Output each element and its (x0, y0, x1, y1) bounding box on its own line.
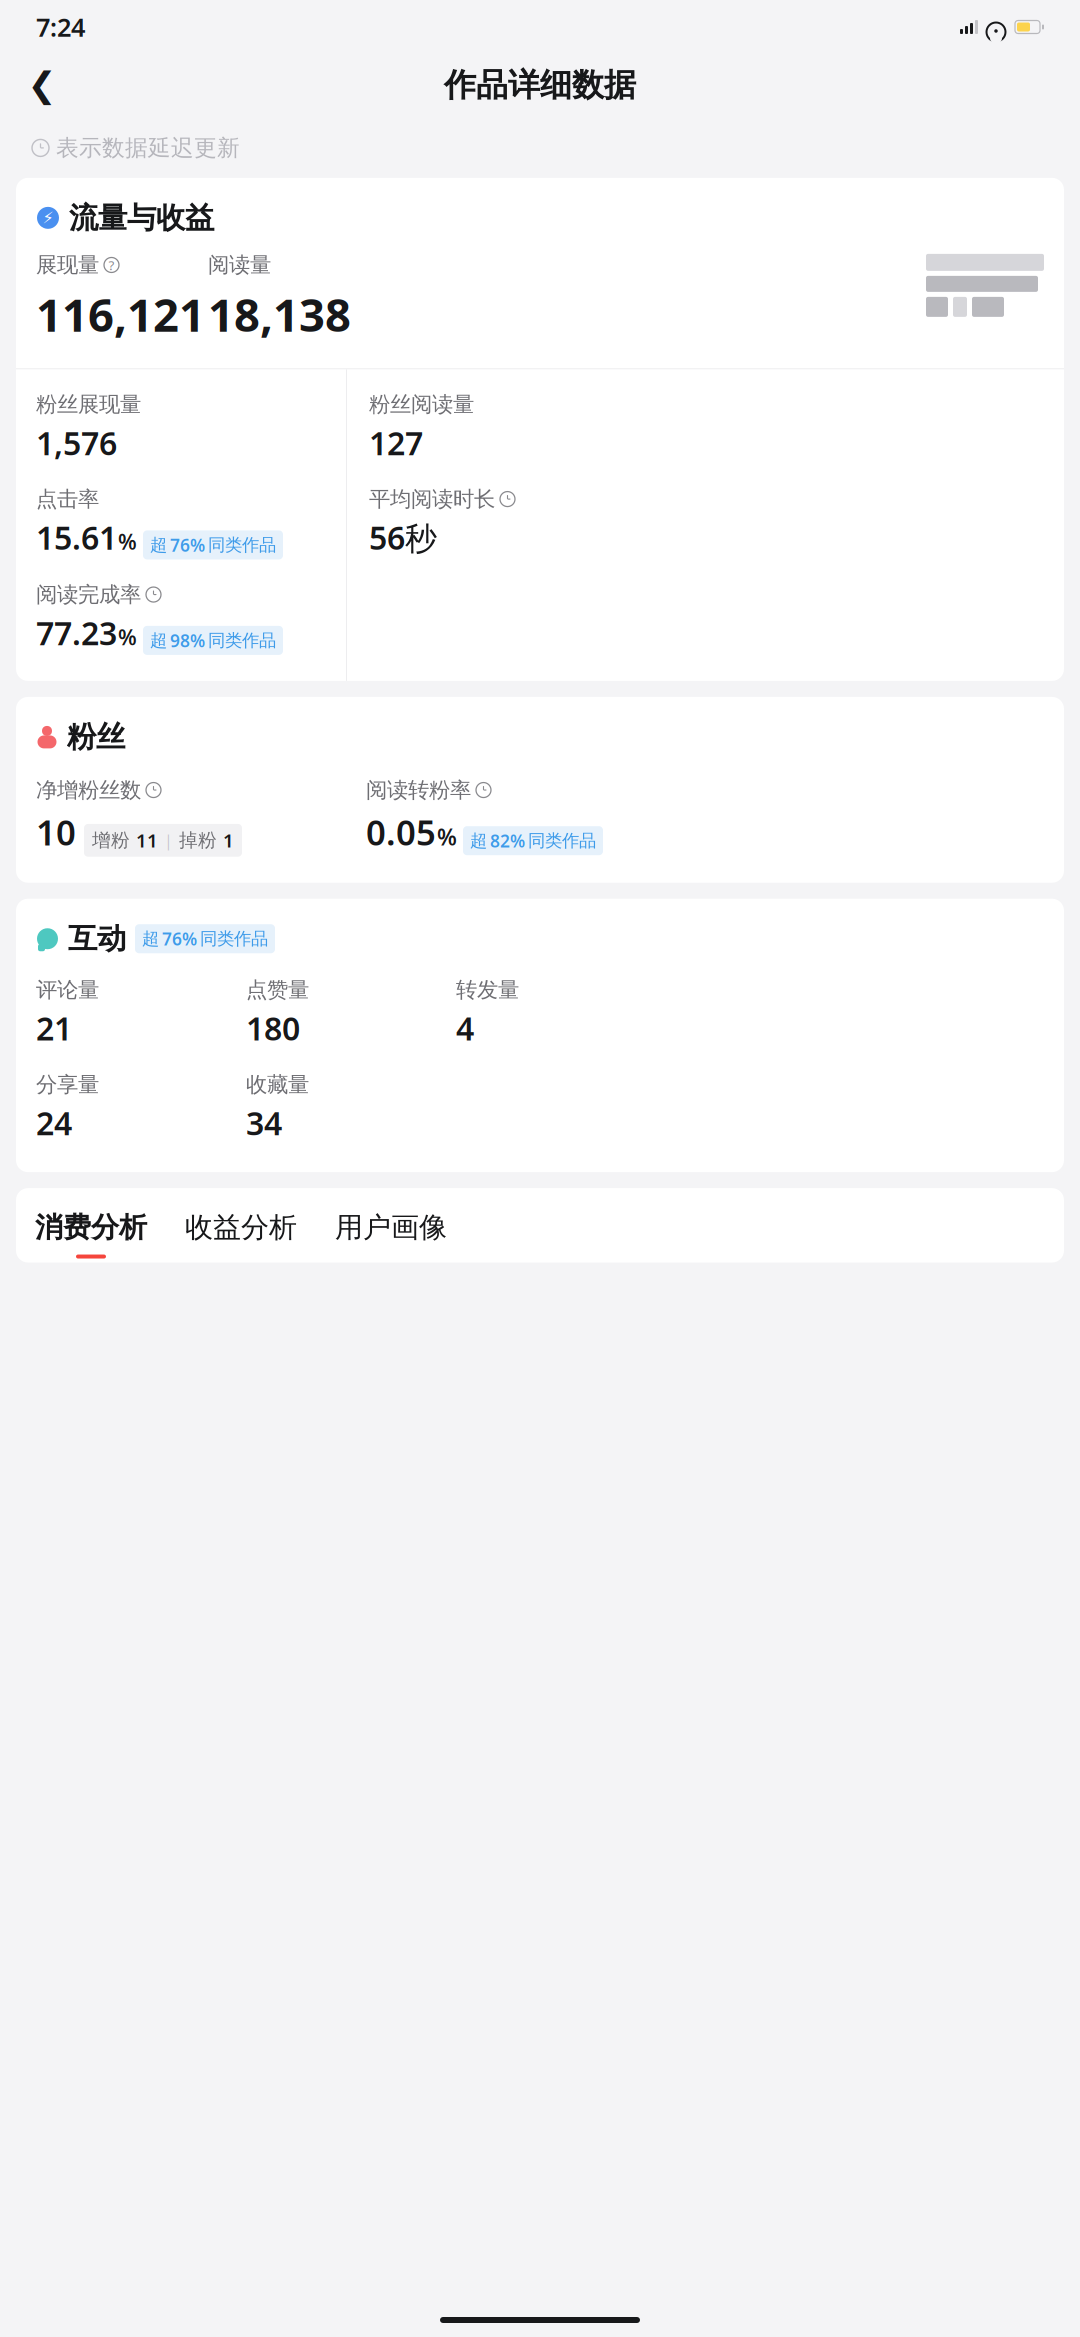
staticText: 18,138 (208, 284, 351, 344)
staticText: 10 (36, 809, 76, 855)
staticText: 0.05 (366, 809, 436, 855)
staticText: 消费分析 (35, 1210, 147, 1244)
button[interactable]: 收益分析 (166, 1188, 316, 1258)
staticText: 互动 (68, 921, 126, 957)
staticText: 点击率 (36, 486, 99, 512)
button[interactable]: 消费分析 (16, 1188, 166, 1258)
staticText: 净增粉丝数 (36, 777, 141, 803)
staticText: 76% (170, 533, 205, 556)
staticText: 粉丝阅读量 (369, 391, 474, 417)
staticText: % (118, 623, 137, 651)
staticText: 11 (136, 828, 158, 853)
staticText: 1,576 (36, 421, 117, 464)
staticText: 流量与收益 (69, 200, 214, 236)
staticText: 作品详细数据 (444, 65, 636, 105)
staticText: 展现量 (36, 252, 99, 278)
button[interactable]: 用户画像 (316, 1188, 466, 1258)
staticText: 同类作品 (208, 630, 276, 651)
staticText: 24 (36, 1102, 72, 1144)
staticText: 点赞量 (246, 977, 309, 1003)
staticText: 98% (170, 629, 205, 652)
staticText: 收藏量 (246, 1071, 309, 1098)
staticText: 超 (150, 630, 167, 651)
staticText: 收益分析 (185, 1210, 297, 1244)
staticText: 超 (142, 928, 159, 949)
staticText: 分享量 (36, 1071, 99, 1098)
staticText: ? (108, 256, 114, 274)
staticText: 平均阅读时长 (369, 486, 495, 512)
staticText: 7:24 (36, 10, 85, 44)
staticText: ❮ (27, 65, 56, 105)
staticText: 表示数据延迟更新 (56, 134, 240, 162)
staticText: % (118, 527, 137, 556)
staticText: 粉丝 (67, 719, 125, 755)
staticText: 116,121 (36, 284, 205, 344)
staticText: 82% (490, 829, 525, 852)
staticText: 15.61 (36, 516, 117, 559)
staticText: 同类作品 (200, 928, 268, 949)
staticText: 掉粉 (179, 829, 217, 852)
staticText: 77.23 (36, 612, 117, 654)
staticText: 粉丝展现量 (36, 391, 141, 417)
staticText: 34 (246, 1102, 282, 1144)
staticText: | (164, 830, 173, 851)
staticText: 同类作品 (208, 534, 276, 556)
staticText: 1 (223, 828, 234, 853)
staticText: 阅读完成率 (36, 581, 141, 608)
button[interactable]: Back (18, 61, 66, 109)
staticText: 阅读量 (208, 252, 271, 278)
staticText: 4 (456, 1007, 474, 1049)
staticText: 127 (369, 421, 423, 464)
staticText: 评论量 (36, 977, 99, 1003)
staticText: 76% (162, 927, 197, 950)
staticText: 阅读转粉率 (366, 777, 471, 803)
staticText: ⚡︎ (42, 209, 53, 227)
staticText: % (437, 822, 457, 852)
staticText: 用户画像 (335, 1210, 447, 1244)
staticText: 超 (150, 534, 167, 556)
staticText: 180 (246, 1007, 300, 1049)
staticText: 同类作品 (528, 830, 596, 851)
staticText: 21 (36, 1007, 72, 1049)
staticText: 转发量 (456, 977, 519, 1003)
staticText: 增粉 (92, 829, 130, 852)
staticText: 56秒 (369, 516, 437, 559)
staticText: 超 (470, 830, 487, 851)
